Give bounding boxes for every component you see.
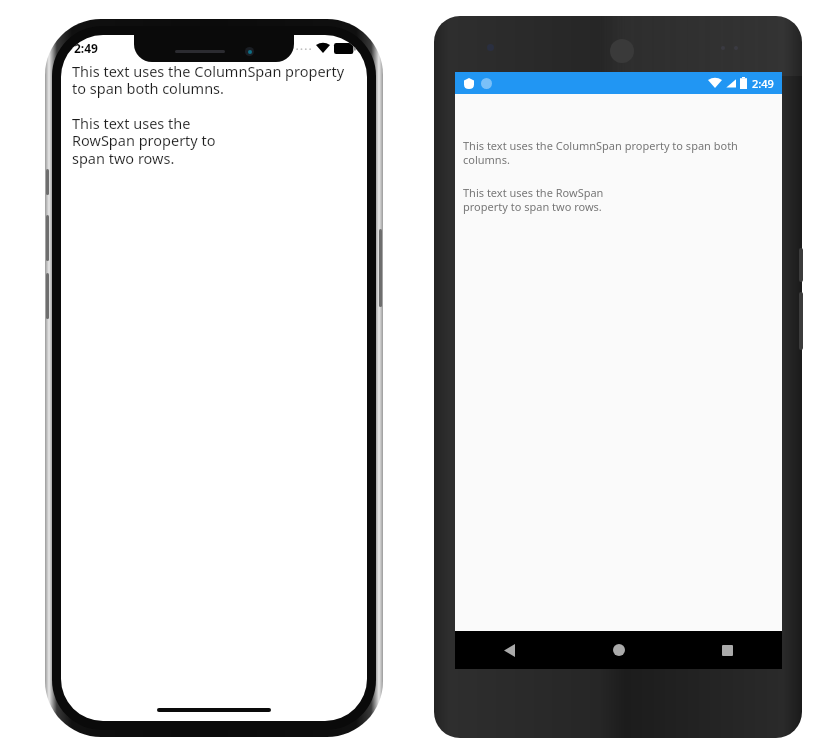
staticText: This text uses the RowSpan property to s…	[463, 185, 604, 214]
button[interactable]: Home	[157, 708, 271, 712]
button[interactable]: Back	[455, 631, 564, 669]
button[interactable]: Home	[564, 631, 673, 669]
staticText: 2:49	[752, 76, 774, 91]
staticText: This text uses the ColumnSpan property t…	[463, 138, 774, 167]
staticText: This text uses the RowSpan property to s…	[72, 113, 216, 168]
staticText: 2:49	[74, 40, 98, 56]
staticText: This text uses the ColumnSpan property t…	[72, 61, 356, 98]
button[interactable]: Recent apps	[673, 631, 782, 669]
